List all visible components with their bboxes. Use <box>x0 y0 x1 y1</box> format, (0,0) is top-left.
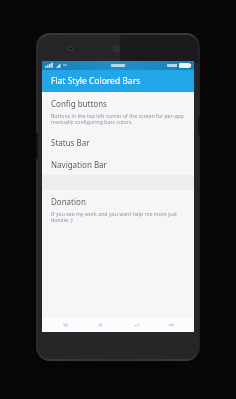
staticText: Config buttons <box>51 98 107 109</box>
staticText: Donation <box>51 196 86 207</box>
button[interactable]: Flat Style Colored Bars <box>42 70 194 92</box>
staticText: Flat Style Colored Bars <box>51 75 141 87</box>
button[interactable]: Donation <box>42 190 194 230</box>
button[interactable]: Home <box>87 318 113 332</box>
button[interactable]: Navigation Bar <box>42 153 194 175</box>
staticText: If you see my work and you want help me … <box>51 210 186 224</box>
staticText: Navigation Bar <box>51 159 107 170</box>
button[interactable]: Status Bar <box>42 131 194 153</box>
button[interactable]: Config buttons <box>42 92 194 131</box>
button[interactable]: Menu <box>158 318 184 332</box>
staticText: Buttons in the top left corner of the sc… <box>51 112 184 126</box>
button[interactable]: Recents <box>52 318 78 332</box>
staticText: Status Bar <box>51 137 90 148</box>
button[interactable]: Back <box>123 318 149 332</box>
